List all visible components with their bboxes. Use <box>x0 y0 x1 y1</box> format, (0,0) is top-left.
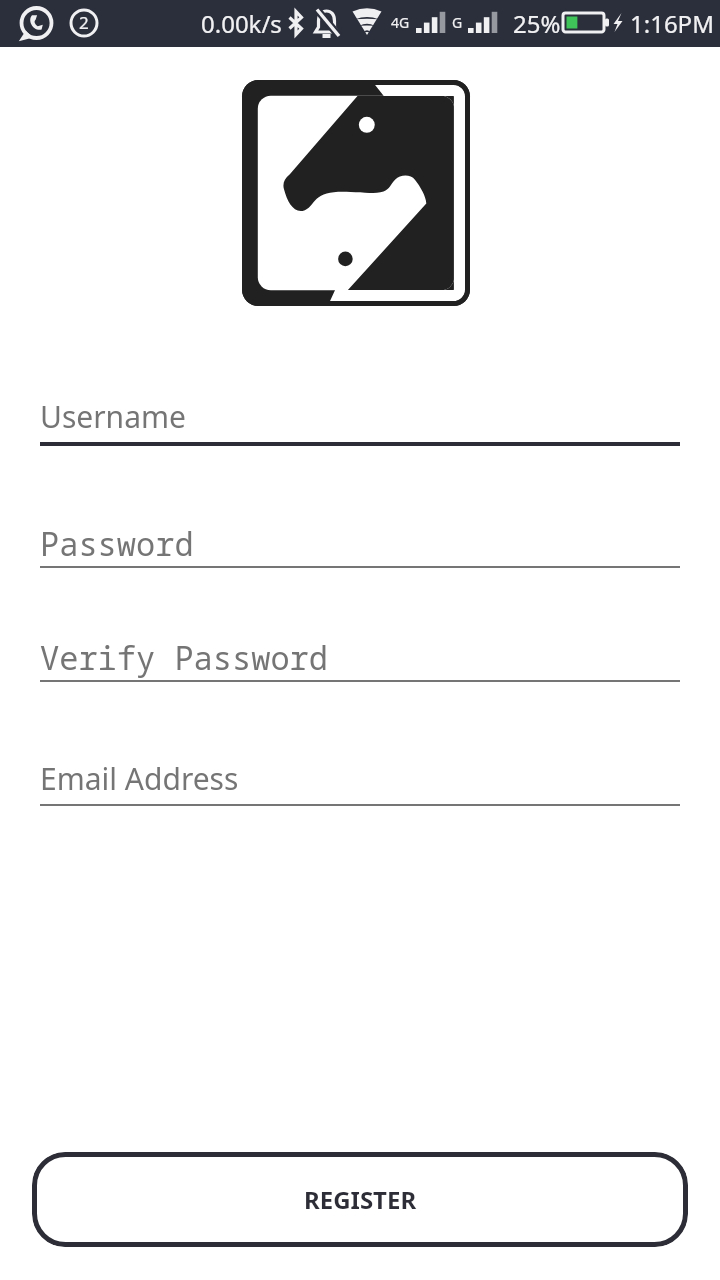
staticText: Username <box>40 396 186 437</box>
button[interactable]: Verify Password <box>40 624 680 684</box>
staticText: Email Address <box>40 758 239 799</box>
staticText: 4G <box>391 13 410 32</box>
staticText: Verify Password <box>40 636 329 680</box>
button[interactable]: Password <box>40 510 680 570</box>
staticText: 25% <box>513 7 561 40</box>
staticText: 0.00k/s <box>201 7 282 40</box>
button[interactable]: Username <box>40 386 680 446</box>
staticText: 1:16PM <box>630 7 714 40</box>
staticText: 2 <box>79 11 89 34</box>
staticText: Password <box>40 522 194 566</box>
button[interactable]: Email Address <box>40 748 680 808</box>
staticText: G <box>452 13 463 32</box>
button[interactable]: REGISTER <box>32 1152 688 1247</box>
staticText: REGISTER <box>304 1183 417 1216</box>
